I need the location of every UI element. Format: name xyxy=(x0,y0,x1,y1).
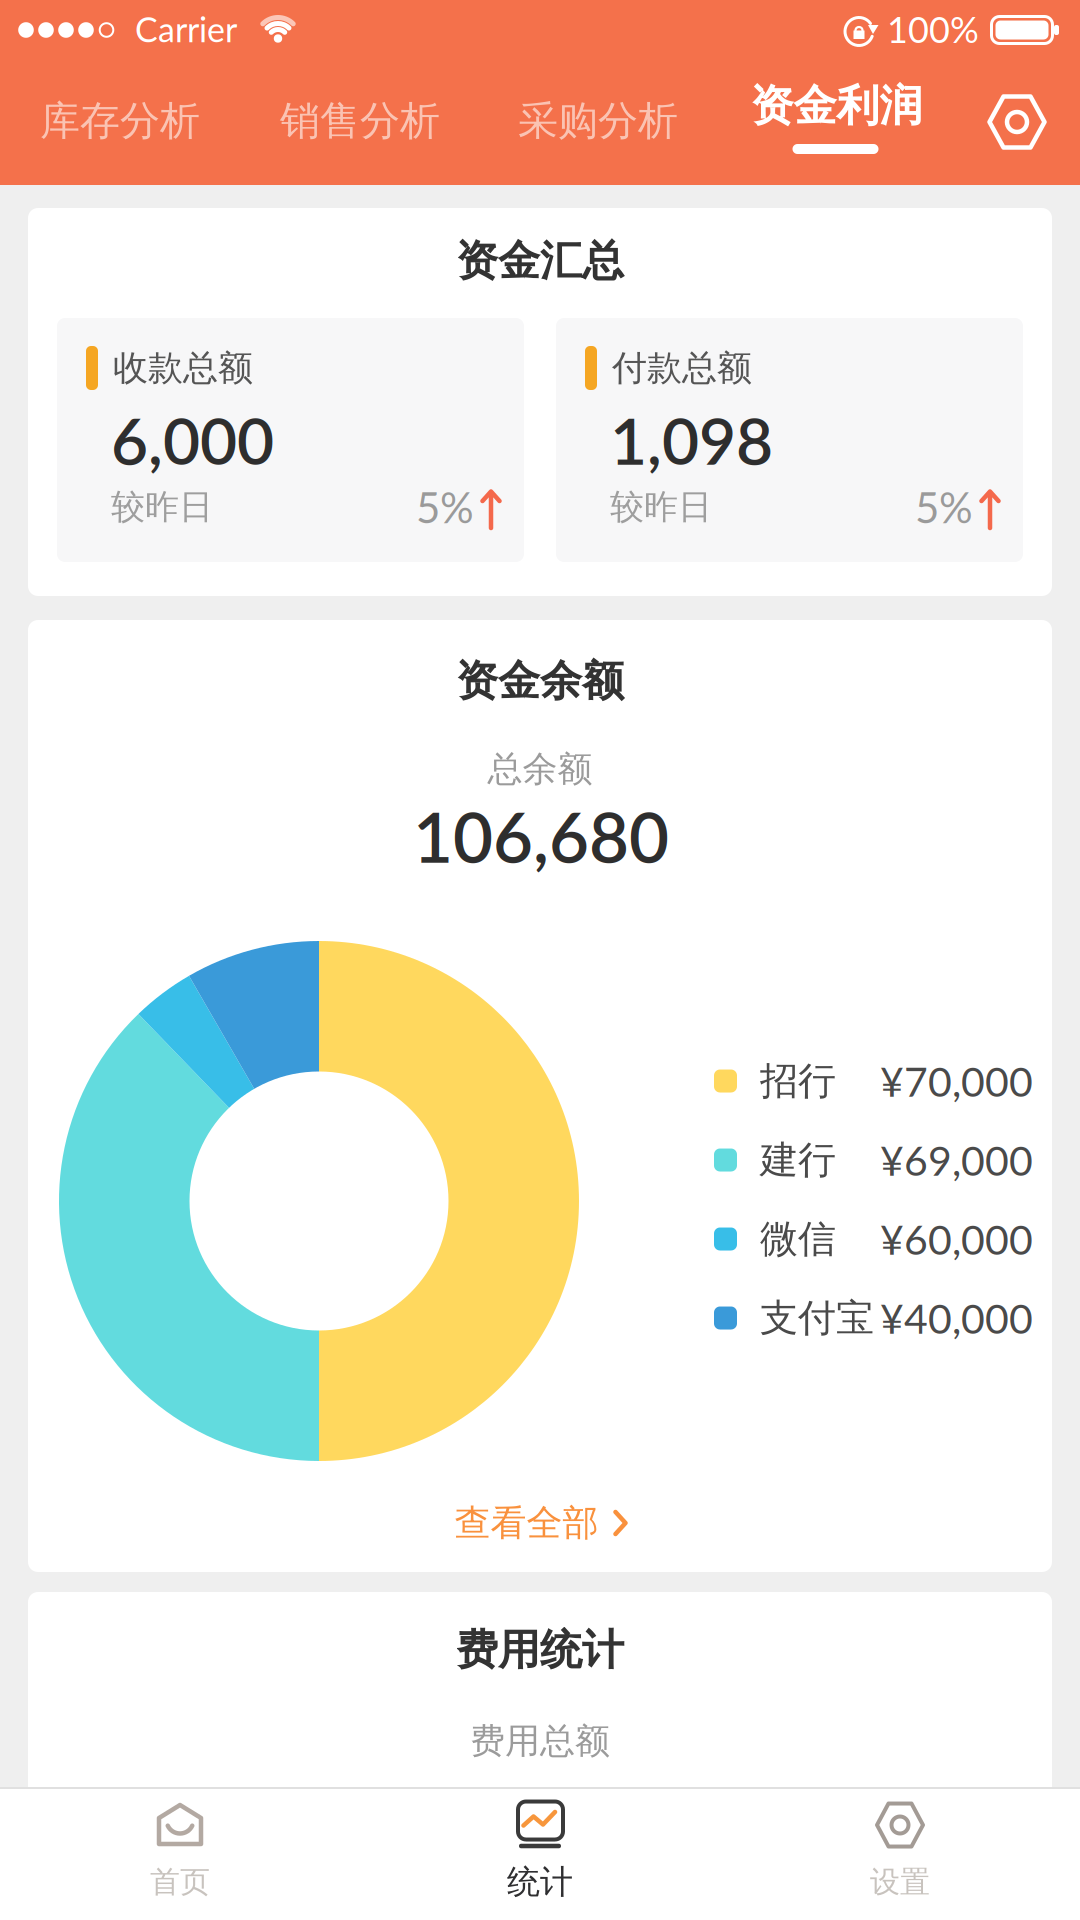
button[interactable]: 查看全部 xyxy=(422,1493,662,1553)
staticText: ¥60,000 xyxy=(880,1214,1033,1264)
staticText: 设置 xyxy=(870,1863,930,1901)
staticText: ¥40,000 xyxy=(880,1293,1033,1343)
staticText: 招行 xyxy=(760,1057,836,1105)
staticText: 首页 xyxy=(150,1863,210,1901)
button[interactable]: 设置 xyxy=(720,1788,1080,1920)
staticText: 库存分析 xyxy=(40,96,200,146)
staticText: 较昨日 xyxy=(610,486,712,528)
staticText: 微信 xyxy=(760,1215,836,1263)
staticText: 费用统计 xyxy=(456,1623,624,1676)
button[interactable]: 采购分析 xyxy=(485,73,710,169)
button[interactable]: 资金利润 xyxy=(724,62,949,176)
button[interactable]: 统计 xyxy=(360,1788,720,1920)
button[interactable]: 首页 xyxy=(0,1788,360,1920)
button[interactable]: 销售分析 xyxy=(247,73,472,169)
staticText: 统计 xyxy=(507,1861,573,1903)
staticText: 支付宝 xyxy=(760,1294,874,1342)
staticText: 5% xyxy=(915,482,973,532)
button[interactable]: 库存分析 xyxy=(7,73,232,169)
staticText: 5% xyxy=(416,482,474,532)
staticText: 付款总额 xyxy=(612,346,752,390)
staticText: 费用总额 xyxy=(470,1719,610,1763)
staticText: 6,000 xyxy=(111,402,274,478)
staticText: 总余额 xyxy=(487,747,592,791)
staticText: 106,680 xyxy=(413,795,669,877)
staticText: 查看全部 xyxy=(454,1500,598,1546)
staticText: 建行 xyxy=(760,1136,836,1184)
staticText: 收款总额 xyxy=(113,346,253,390)
staticText: ¥70,000 xyxy=(880,1056,1033,1106)
staticText: 资金利润 xyxy=(750,79,922,133)
staticText: 100% xyxy=(887,7,979,51)
staticText: 销售分析 xyxy=(280,96,440,146)
button[interactable]: 设置 xyxy=(989,94,1045,150)
staticText: 采购分析 xyxy=(518,96,678,146)
staticText: 资金汇总 xyxy=(456,234,624,287)
staticText: 资金余额 xyxy=(456,654,624,707)
staticText: ¥69,000 xyxy=(880,1135,1033,1185)
staticText: Carrier xyxy=(135,9,237,49)
staticText: 较昨日 xyxy=(111,486,213,528)
staticText: 1,098 xyxy=(610,402,773,478)
